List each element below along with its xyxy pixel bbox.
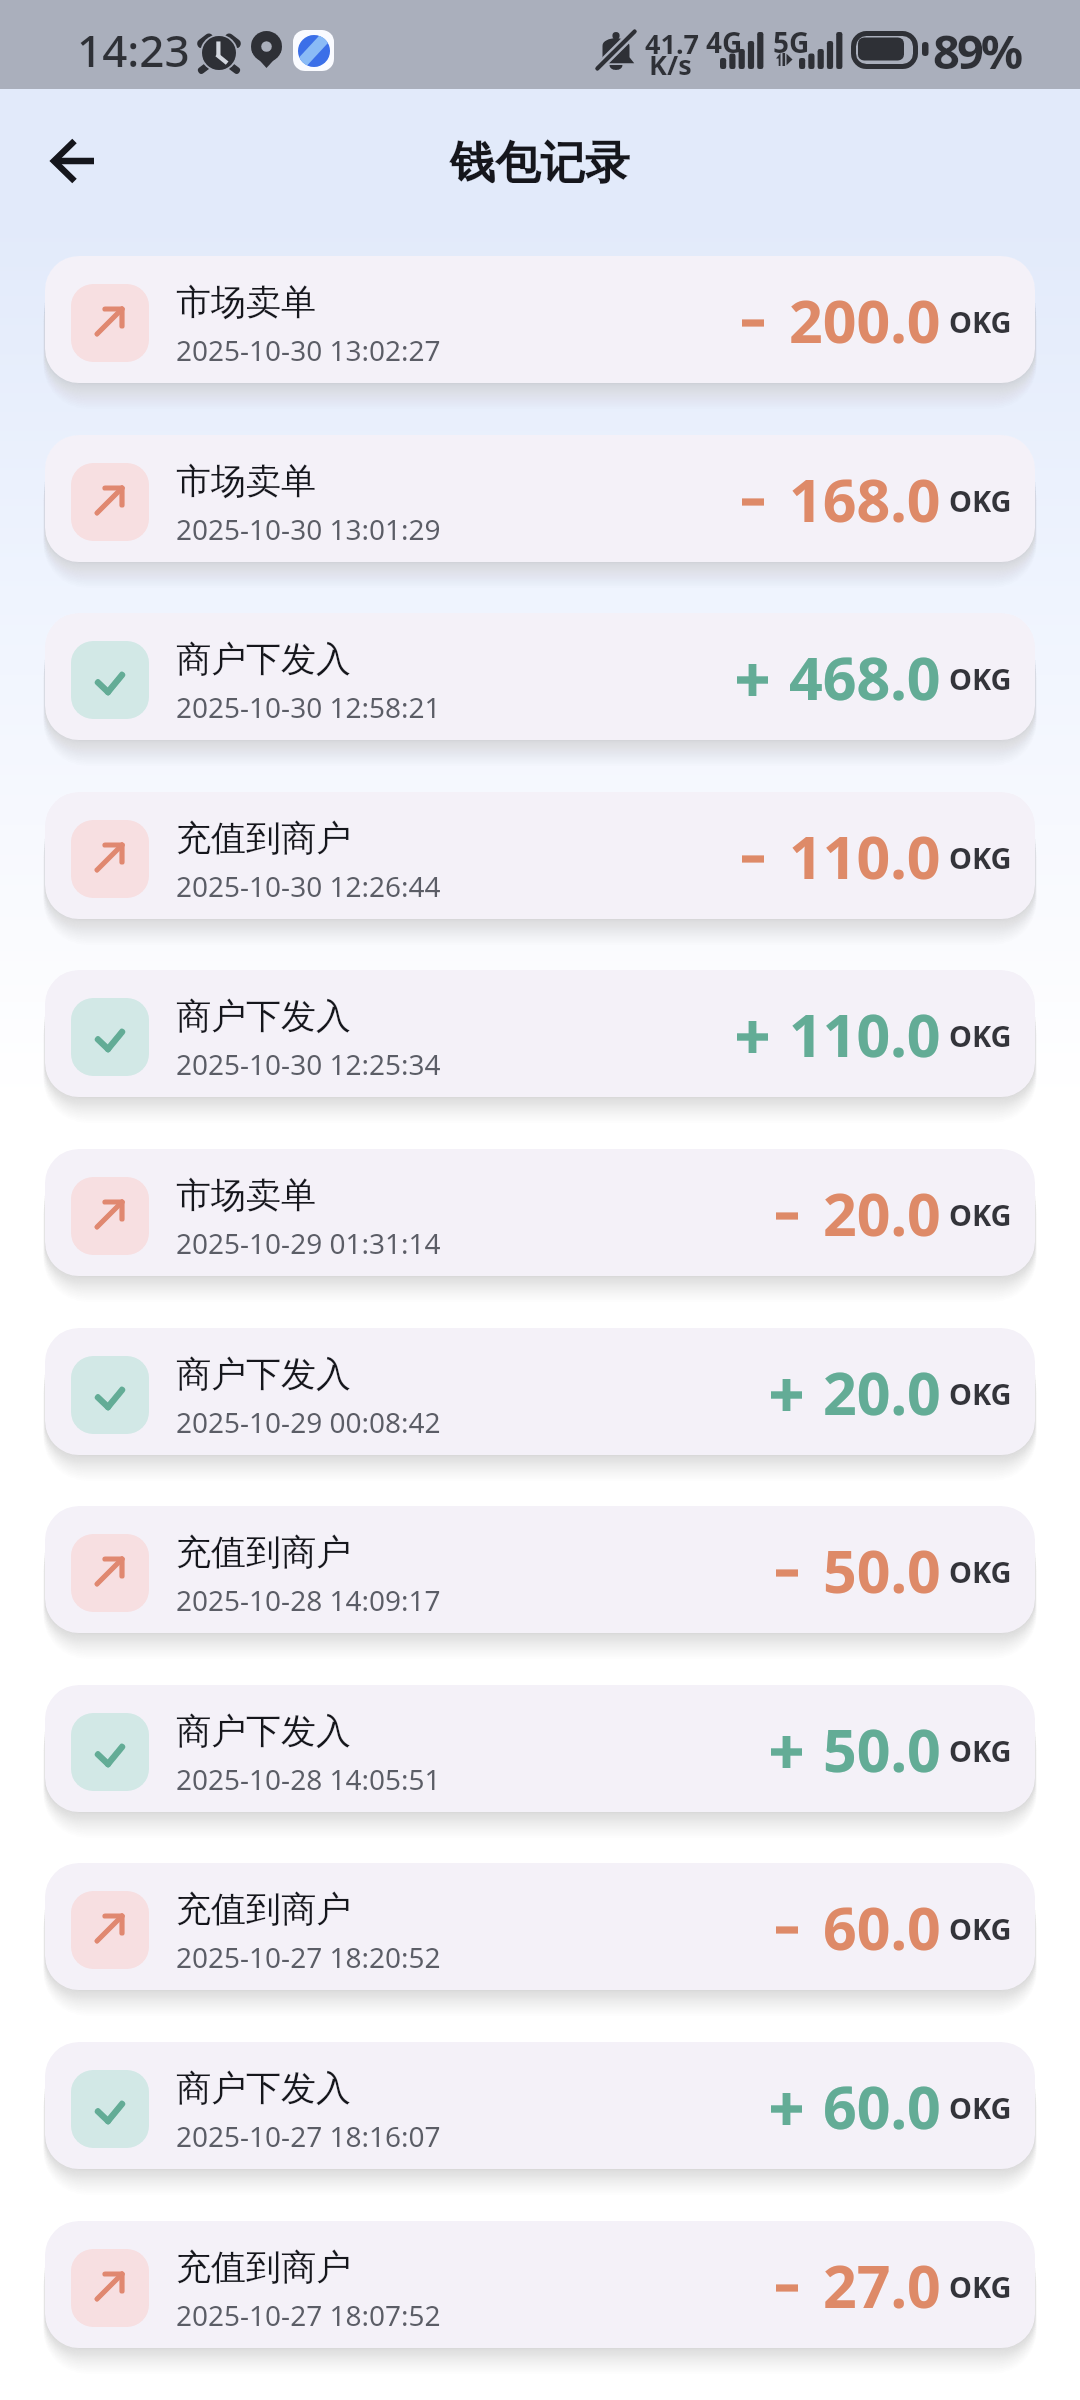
button[interactable]: 商户下发入 — [45, 1685, 1035, 1812]
button[interactable]: 充值到商户 — [45, 2221, 1035, 2348]
staticText: 钱包记录 — [450, 135, 630, 192]
staticText: 2025-10-28 14:05:51 — [176, 1760, 441, 1798]
button[interactable]: 商户下发入 — [45, 1328, 1035, 1455]
staticText: OKG — [949, 1195, 1012, 1234]
button[interactable]: 商户下发入 — [45, 2042, 1035, 2169]
staticText: 14:23 — [77, 20, 190, 80]
staticText: 50.0 — [823, 1709, 941, 1789]
button[interactable]: 充值到商户 — [45, 1506, 1035, 1633]
staticText: 2025-10-27 18:07:52 — [176, 2296, 441, 2334]
staticText: 2025-10-27 18:20:52 — [176, 1938, 441, 1976]
staticText: 20.0 — [823, 1352, 941, 1432]
staticText: OKG — [949, 659, 1012, 698]
staticText: OKG — [949, 1374, 1012, 1413]
staticText: 168.0 — [789, 459, 941, 539]
staticText: OKG — [949, 838, 1012, 877]
staticText: 充值到商户 — [176, 816, 351, 860]
staticText: K/s — [649, 46, 692, 83]
staticText: 充值到商户 — [176, 2245, 351, 2289]
staticText: 市场卖单 — [176, 280, 316, 324]
staticText: 4G — [706, 23, 743, 61]
staticText: 2025-10-28 14:09:17 — [176, 1581, 441, 1619]
staticText: 商户下发入 — [176, 2066, 351, 2110]
staticText: OKG — [949, 1909, 1012, 1948]
button[interactable]: 市场卖单 — [45, 256, 1035, 383]
staticText: OKG — [949, 1016, 1012, 1055]
staticText: 商户下发入 — [176, 994, 351, 1038]
staticText: 商户下发入 — [176, 637, 351, 681]
staticText: 2025-10-30 12:25:34 — [176, 1045, 441, 1083]
staticText: 充值到商户 — [176, 1530, 351, 1574]
staticText: OKG — [949, 2088, 1012, 2127]
staticText: 2025-10-30 12:26:44 — [176, 867, 441, 905]
staticText: 2025-10-30 13:02:27 — [176, 331, 441, 369]
staticText: 468.0 — [789, 637, 941, 717]
button[interactable]: Back — [30, 117, 118, 205]
staticText: 5G — [773, 23, 810, 61]
staticText: 2025-10-27 18:16:07 — [176, 2117, 441, 2155]
staticText: 商户下发入 — [176, 1352, 351, 1396]
staticText: 110.0 — [789, 994, 941, 1074]
button[interactable]: 市场卖单 — [45, 435, 1035, 562]
staticText: 20.0 — [823, 1173, 941, 1253]
button[interactable]: 商户下发入 — [45, 970, 1035, 1097]
staticText: OKG — [949, 2267, 1012, 2306]
staticText: 27.0 — [823, 2245, 941, 2325]
staticText: 充值到商户 — [176, 1887, 351, 1931]
staticText: 200.0 — [789, 280, 941, 360]
button[interactable]: 充值到商户 — [45, 1863, 1035, 1990]
staticText: 市场卖单 — [176, 1173, 316, 1217]
staticText: 110.0 — [789, 816, 941, 896]
staticText: OKG — [949, 302, 1012, 341]
staticText: OKG — [949, 1731, 1012, 1770]
staticText: 商户下发入 — [176, 1709, 351, 1753]
staticText: 50.0 — [823, 1530, 941, 1610]
staticText: OKG — [949, 481, 1012, 520]
staticText: 2025-10-30 12:58:21 — [176, 688, 441, 726]
staticText: 60.0 — [823, 2066, 941, 2146]
button[interactable]: 商户下发入 — [45, 613, 1035, 740]
button[interactable]: 充值到商户 — [45, 792, 1035, 919]
staticText: 2025-10-30 13:01:29 — [176, 510, 441, 548]
staticText: 市场卖单 — [176, 459, 316, 503]
staticText: 2025-10-29 00:08:42 — [176, 1403, 441, 1441]
staticText: 41.7 — [645, 25, 699, 62]
staticText: 89% — [933, 19, 1021, 83]
button[interactable]: 市场卖单 — [45, 1149, 1035, 1276]
staticText: OKG — [949, 1552, 1012, 1591]
staticText: 60.0 — [823, 1887, 941, 1967]
staticText: 2025-10-29 01:31:14 — [176, 1224, 441, 1262]
